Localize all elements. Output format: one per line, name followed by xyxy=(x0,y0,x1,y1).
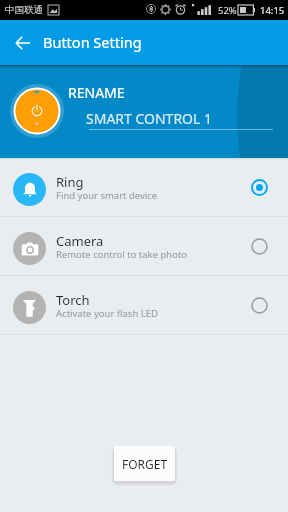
button[interactable]: Back xyxy=(8,28,37,57)
staticText: Find your smart device xyxy=(56,189,158,202)
staticText: FORGET xyxy=(122,456,168,472)
button[interactable]: FORGET xyxy=(114,446,175,481)
staticText: Button Setting xyxy=(43,32,142,52)
staticText: Torch xyxy=(56,291,90,309)
staticText: 14:15 xyxy=(260,4,285,17)
staticText: Ring xyxy=(56,173,84,191)
staticText: RENAME xyxy=(68,83,125,102)
button[interactable]: Select Camera xyxy=(239,226,279,266)
button[interactable]: Ring selected xyxy=(239,167,279,207)
staticText: Remote control to take photo xyxy=(56,248,188,261)
button[interactable]: Select Torch xyxy=(239,285,279,325)
staticText: 中国联通 xyxy=(5,4,43,16)
button[interactable]: Power xyxy=(13,87,61,135)
button[interactable]: Ring xyxy=(0,158,288,216)
staticText: SMART CONTROL 1 xyxy=(86,109,213,128)
staticText: Camera xyxy=(56,232,104,250)
button[interactable]: Camera xyxy=(0,217,288,275)
staticText: Activate your flash LED xyxy=(56,307,158,320)
button[interactable]: Torch xyxy=(0,276,288,334)
staticText: 52% xyxy=(218,4,237,17)
